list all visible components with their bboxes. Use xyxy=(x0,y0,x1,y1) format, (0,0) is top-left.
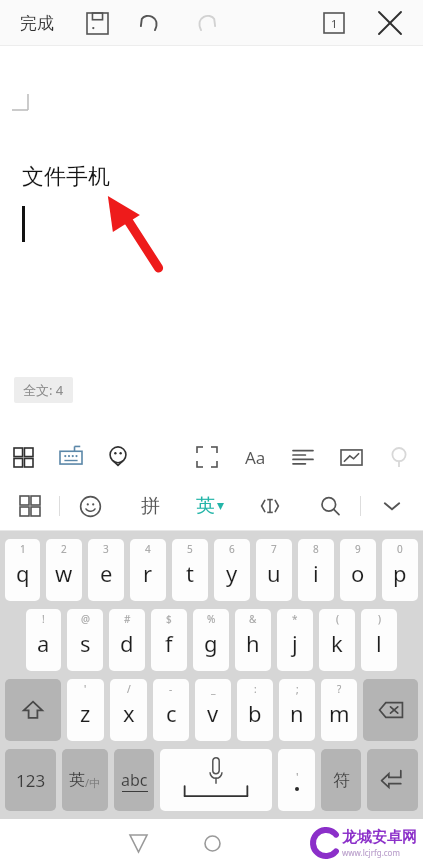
button[interactable]: $ xyxy=(151,609,187,671)
staticText: 123 xyxy=(16,769,46,792)
button[interactable]: Font xyxy=(231,433,279,481)
button[interactable]: : xyxy=(237,679,273,741)
button[interactable]: Hide keyboard xyxy=(361,481,423,531)
button[interactable]: % xyxy=(193,609,229,671)
staticText: c xyxy=(166,698,177,728)
staticText: www.lcjrfg.com xyxy=(342,847,400,858)
button[interactable]: abc xyxy=(114,749,154,811)
staticText: & xyxy=(249,612,257,626)
staticText: y xyxy=(226,558,238,588)
staticText: 4 xyxy=(145,542,151,556)
button[interactable]: ! xyxy=(26,609,61,671)
staticText: 3 xyxy=(103,542,109,556)
staticText: abc xyxy=(121,769,148,791)
other: Shift xyxy=(22,699,44,721)
staticText: 符 xyxy=(333,770,350,791)
button[interactable]: Align xyxy=(279,433,327,481)
button[interactable]: Undo xyxy=(132,4,170,42)
button[interactable]: 6 xyxy=(214,539,250,601)
button[interactable]: Image xyxy=(327,433,375,481)
button[interactable]: 0 xyxy=(382,539,418,601)
button[interactable]: Save xyxy=(78,4,116,42)
staticText: 0 xyxy=(397,542,403,556)
staticText: 1 xyxy=(331,16,338,31)
button[interactable]: 1 xyxy=(5,539,40,601)
button[interactable]: - xyxy=(153,679,189,741)
staticText: $ xyxy=(166,612,172,626)
button[interactable]: 英 xyxy=(180,481,240,531)
button[interactable]: ' xyxy=(278,749,315,811)
button[interactable]: / xyxy=(110,679,147,741)
button[interactable]: Pinyin xyxy=(120,481,180,531)
button[interactable]: Enter xyxy=(367,749,418,811)
staticText: h xyxy=(246,628,260,658)
button[interactable]: Search xyxy=(300,481,360,531)
staticText: q xyxy=(16,558,30,588)
button[interactable]: Emoji xyxy=(94,433,142,481)
staticText: l xyxy=(376,628,382,658)
staticText: ; xyxy=(296,682,299,696)
button[interactable]: Shift xyxy=(5,679,61,741)
button[interactable]: Panel xyxy=(0,433,47,481)
staticText: 1 xyxy=(20,542,26,556)
button[interactable]: Back xyxy=(116,821,160,865)
button[interactable]: Backspace xyxy=(363,679,418,741)
staticText: % xyxy=(207,612,216,626)
staticText: 英 xyxy=(196,494,215,518)
button[interactable]: Apps xyxy=(0,481,59,531)
button[interactable]: Home xyxy=(190,821,234,865)
staticText: @ xyxy=(81,612,90,626)
button[interactable]: 全文: 4 xyxy=(14,377,73,403)
button[interactable]: 123 xyxy=(5,749,56,811)
button[interactable]: ? xyxy=(321,679,357,741)
button[interactable]: 5 xyxy=(172,539,208,601)
staticText: 7 xyxy=(271,542,277,556)
staticText: g xyxy=(204,628,218,658)
staticText: 完成 xyxy=(20,13,54,34)
staticText: b xyxy=(248,698,262,728)
staticText: 龙城安卓网 xyxy=(342,828,417,847)
button[interactable]: _ xyxy=(195,679,231,741)
button[interactable]: & xyxy=(235,609,271,671)
staticText: 全文: 4 xyxy=(23,381,64,399)
button[interactable]: * xyxy=(277,609,313,671)
staticText: k xyxy=(331,628,343,658)
staticText: ! xyxy=(42,612,45,626)
button[interactable]: Select xyxy=(183,433,231,481)
button[interactable]: @ xyxy=(67,609,103,671)
button[interactable]: # xyxy=(109,609,145,671)
staticText: - xyxy=(169,682,173,696)
button[interactable]: Keyboard xyxy=(47,433,94,481)
button[interactable]: Space xyxy=(160,749,272,811)
button[interactable]: 英 xyxy=(62,749,108,811)
button[interactable]: Pages xyxy=(315,4,353,42)
button[interactable]: 2 xyxy=(46,539,82,601)
button[interactable]: 7 xyxy=(256,539,292,601)
button[interactable]: Emoticons xyxy=(60,481,120,531)
staticText: o xyxy=(351,558,365,588)
staticText: i xyxy=(313,558,319,588)
button[interactable]: Close xyxy=(371,4,409,42)
button[interactable]: ) xyxy=(361,609,397,671)
staticText: d xyxy=(120,628,134,658)
button[interactable]: 3 xyxy=(88,539,124,601)
staticText: _ xyxy=(211,682,216,696)
staticText: w xyxy=(55,558,73,588)
staticText: ' xyxy=(84,682,87,696)
button[interactable]: ' xyxy=(67,679,104,741)
button[interactable]: 符 xyxy=(321,749,361,811)
other: Backspace xyxy=(378,697,404,723)
button[interactable]: 完成 xyxy=(10,7,64,40)
staticText: ' xyxy=(296,769,299,784)
button[interactable]: Cursor xyxy=(240,481,300,531)
button[interactable]: Voice xyxy=(375,433,423,481)
button[interactable]: 4 xyxy=(130,539,166,601)
button[interactable]: 9 xyxy=(340,539,376,601)
button[interactable]: Redo xyxy=(186,4,224,42)
button[interactable]: ( xyxy=(319,609,355,671)
staticText: e xyxy=(100,558,113,588)
button[interactable]: ; xyxy=(279,679,315,741)
staticText: ? xyxy=(337,682,342,696)
staticText: : xyxy=(254,682,257,696)
button[interactable]: 8 xyxy=(298,539,334,601)
